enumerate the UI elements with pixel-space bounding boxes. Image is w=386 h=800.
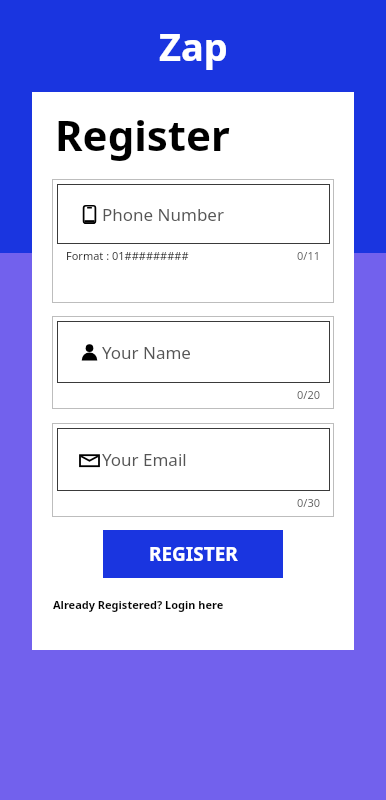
staticText: 0/20 xyxy=(297,387,320,402)
staticText: Your Name xyxy=(102,341,191,364)
staticText: Zap xyxy=(159,20,228,72)
staticText: Register xyxy=(55,106,230,163)
staticText: Your Email xyxy=(102,448,187,471)
staticText: 0/30 xyxy=(297,495,320,510)
other: Person xyxy=(79,342,99,362)
button[interactable]: Email xyxy=(57,428,330,491)
other: Phone xyxy=(79,204,99,224)
button[interactable]: Phone xyxy=(57,184,330,244)
button[interactable]: Already Registered? Login here xyxy=(53,597,224,612)
staticText: Phone Number xyxy=(102,203,224,226)
staticText: REGISTER xyxy=(149,541,238,567)
other: Email xyxy=(79,450,99,470)
staticText: Format : 01######### xyxy=(66,248,189,263)
button[interactable]: Person xyxy=(57,321,330,383)
button[interactable]: REGISTER xyxy=(103,530,283,578)
staticText: 0/11 xyxy=(297,248,320,263)
